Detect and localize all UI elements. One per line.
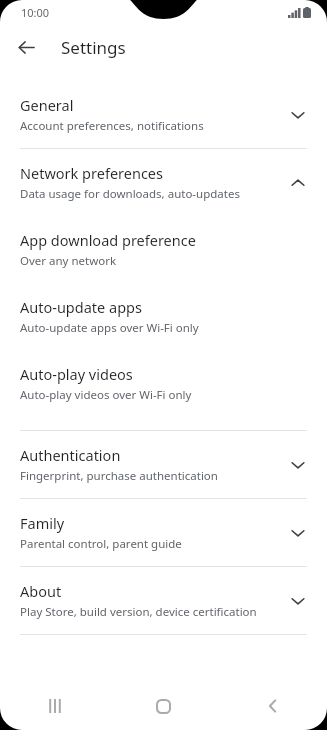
staticText: App download preference [20, 230, 196, 250]
staticText: Settings [61, 36, 126, 59]
staticText: Data usage for downloads, auto-updates [20, 186, 240, 202]
button[interactable]: Back [12, 33, 40, 61]
button[interactable]: Family [0, 499, 327, 566]
staticText: Authentication [20, 445, 121, 465]
button[interactable]: Network preferences [0, 149, 327, 216]
button[interactable]: App download preference [0, 216, 327, 283]
staticText: Parental control, parent guide [20, 536, 182, 552]
button[interactable]: Authentication [0, 431, 327, 498]
button[interactable]: Auto-update apps [0, 283, 327, 350]
button[interactable]: Recent apps [0, 682, 109, 730]
staticText: About [20, 581, 62, 601]
button[interactable]: Back [218, 682, 327, 730]
staticText: Account preferences, notifications [20, 118, 204, 134]
staticText: Auto-update apps [20, 297, 142, 317]
staticText: Family [20, 513, 65, 533]
button[interactable]: Home [109, 682, 218, 730]
staticText: Over any network [20, 253, 117, 269]
staticText: 10:00 [21, 5, 50, 20]
staticText: Play Store, build version, device certif… [20, 604, 257, 620]
staticText: Network preferences [20, 163, 163, 183]
button[interactable]: General [0, 81, 327, 148]
staticText: Auto-update apps over Wi-Fi only [20, 320, 199, 336]
staticText: General [20, 95, 74, 115]
staticText: Fingerprint, purchase authentication [20, 468, 218, 484]
button[interactable]: Auto-play videos [0, 350, 327, 417]
staticText: Auto-play videos over Wi-Fi only [20, 387, 192, 403]
button[interactable]: About [0, 567, 327, 634]
staticText: Auto-play videos [20, 364, 133, 384]
